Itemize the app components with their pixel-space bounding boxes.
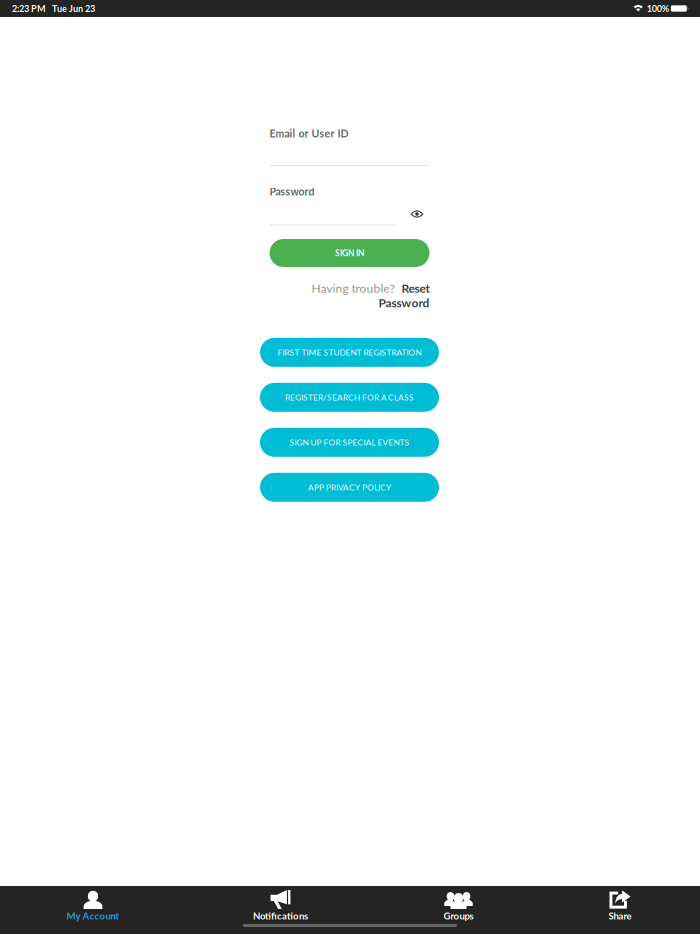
staticText: 100%: [647, 3, 669, 14]
button[interactable]: Groups: [442, 890, 474, 922]
staticText: Password: [378, 295, 429, 310]
staticText: Having trouble?: [311, 281, 394, 295]
button[interactable]: APP PRIVACY POLICY: [260, 473, 439, 502]
button[interactable]: FIRST TIME STUDENT REGISTRATION: [260, 338, 439, 367]
staticText: 2:23 PM: [12, 3, 46, 14]
staticText: Email or User ID: [269, 127, 348, 140]
button[interactable]: Show password: [404, 205, 434, 222]
staticText: Share: [608, 910, 631, 921]
staticText: REGISTER/SEARCH FOR A CLASS: [285, 392, 414, 402]
staticText: FIRST TIME STUDENT REGISTRATION: [277, 347, 421, 357]
button[interactable]: Notifications: [251, 890, 309, 922]
staticText: Notifications: [253, 910, 308, 921]
button[interactable]: Reset: [394, 281, 429, 295]
button[interactable]: SIGN UP FOR SPECIAL EVENTS: [260, 428, 439, 457]
staticText: My Account: [66, 910, 119, 921]
staticText: Reset: [401, 281, 429, 295]
staticText: SIGN UP FOR SPECIAL EVENTS: [289, 437, 409, 447]
staticText: Groups: [443, 910, 473, 921]
staticText: Tue Jun 23: [52, 3, 95, 14]
button[interactable]: My Account: [67, 890, 118, 922]
button[interactable]: REGISTER/SEARCH FOR A CLASS: [260, 383, 439, 412]
button[interactable]: Password: [378, 295, 429, 310]
staticText: Password: [269, 185, 314, 198]
staticText: SIGN IN: [335, 248, 364, 258]
button[interactable]: SIGN IN: [269, 239, 429, 267]
button[interactable]: Share: [607, 890, 632, 922]
staticText: APP PRIVACY POLICY: [308, 482, 391, 492]
